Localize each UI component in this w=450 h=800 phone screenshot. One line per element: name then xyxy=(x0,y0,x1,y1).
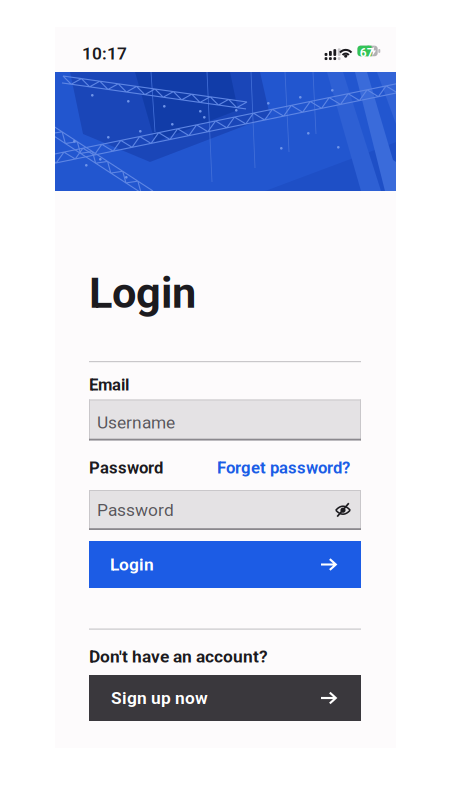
staticText: 10:17 xyxy=(82,43,127,64)
staticText: Login xyxy=(110,554,154,575)
button[interactable]: Sign up now xyxy=(89,675,361,721)
button[interactable]: Forget password? xyxy=(217,458,350,477)
staticText: Login xyxy=(89,267,196,318)
staticText: Sign up now xyxy=(111,688,208,708)
staticText: Forget password? xyxy=(217,458,350,477)
staticText: Password xyxy=(89,458,163,477)
staticText: Username xyxy=(97,412,175,433)
staticText: 67 xyxy=(360,46,374,60)
staticText: Email xyxy=(89,375,129,394)
staticText: Don't have an account? xyxy=(89,646,268,667)
staticText: Password xyxy=(97,500,174,520)
button[interactable]: Show password xyxy=(335,502,351,518)
button[interactable]: Login xyxy=(89,541,361,588)
